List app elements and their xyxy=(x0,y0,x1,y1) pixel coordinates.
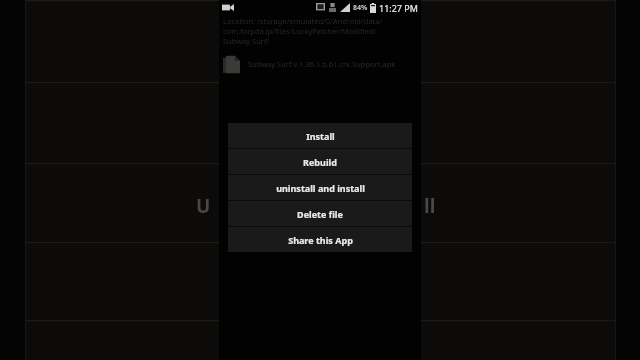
staticText: Subway Surf v.1.36.1.b.61.crk.Support.ap… xyxy=(248,59,396,69)
staticText: U xyxy=(196,193,211,219)
button[interactable]: uninstall and install xyxy=(228,175,412,200)
staticText: 11:27 PM xyxy=(379,2,418,14)
staticText: Location: /storage/emulated/0/Android/da… xyxy=(223,16,383,26)
staticText: Share this App xyxy=(288,234,353,246)
button[interactable]: Delete file xyxy=(228,201,412,226)
button[interactable]: Share this App xyxy=(228,227,412,252)
staticText: com.forpda.lp/files/LuckyPatcher/Modifie… xyxy=(223,26,377,36)
other: SIM card xyxy=(329,3,336,12)
other: Battery 84 percent xyxy=(370,3,376,13)
staticText: Subway Surf/ xyxy=(223,36,270,46)
staticText: ll xyxy=(424,193,436,219)
button[interactable]: Rebuild xyxy=(228,149,412,174)
button[interactable]: Subway Surf v.1.36.1.b.61.crk.Support.ap… xyxy=(219,51,421,77)
other: Signal strength xyxy=(340,3,350,12)
staticText: Install xyxy=(306,130,335,142)
staticText: 84% xyxy=(353,3,368,13)
button[interactable]: Install xyxy=(228,123,412,148)
other: Cast xyxy=(316,3,325,12)
other: Screen recording xyxy=(222,3,234,12)
staticText: Delete file xyxy=(297,208,343,220)
staticText: uninstall and install xyxy=(276,182,365,194)
staticText: Rebuild xyxy=(303,156,337,168)
